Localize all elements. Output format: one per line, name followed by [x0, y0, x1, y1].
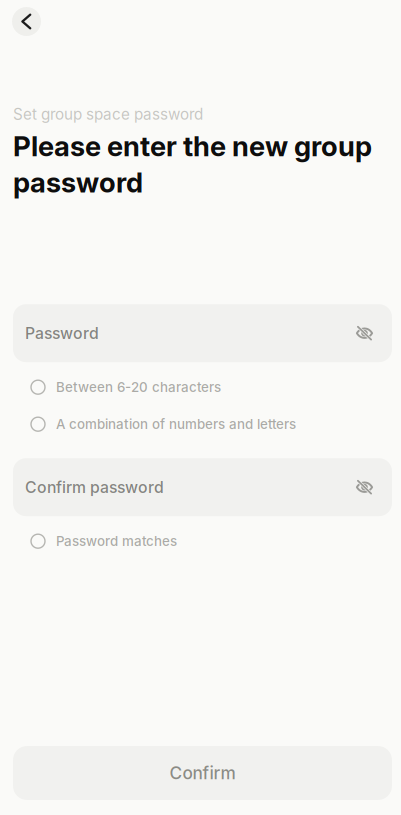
staticText: Set group space password — [13, 105, 203, 123]
staticText: Confirm — [169, 763, 235, 783]
button[interactable]: Show Password — [344, 304, 373, 362]
staticText: Password matches — [56, 533, 177, 549]
staticText: password — [13, 166, 143, 199]
staticText: Password — [25, 324, 99, 343]
staticText: Confirm password — [25, 478, 164, 497]
button[interactable]: Show Confirm password — [344, 458, 373, 516]
staticText: Please enter the new group — [13, 129, 372, 163]
button[interactable]: Back — [12, 7, 41, 36]
button[interactable]: Confirm — [13, 746, 392, 800]
staticText: Between 6-20 characters — [56, 379, 221, 395]
staticText: A combination of numbers and letters — [56, 416, 296, 432]
